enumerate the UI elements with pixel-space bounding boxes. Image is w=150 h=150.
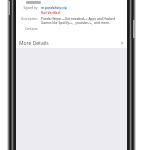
other: Open more details	[120, 41, 124, 45]
staticText: Contains:	[19, 27, 38, 31]
staticText: Not Verified	[41, 11, 60, 15]
staticText: Signed by:	[19, 6, 38, 10]
staticText: Panda Helper—Get tweaked++ Apps and Hack…	[41, 17, 123, 25]
staticText: More Details	[19, 40, 49, 47]
button[interactable]: m.pandahelp.vip	[41, 6, 68, 10]
button[interactable]: More Details	[16, 38, 127, 48]
button[interactable]	[26, 1, 41, 4]
staticText: Description:	[19, 17, 38, 21]
